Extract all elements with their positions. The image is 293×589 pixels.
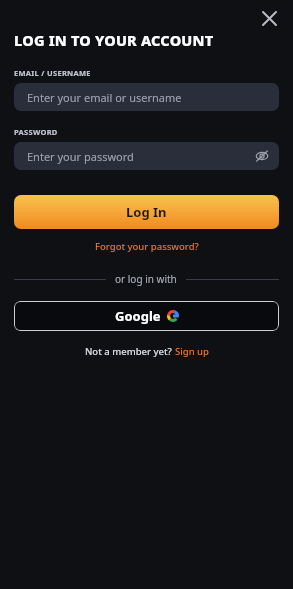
staticText: Sign up	[175, 345, 209, 358]
button[interactable]: Log In	[14, 195, 279, 229]
button[interactable]: Show password	[251, 145, 273, 167]
staticText: LOG IN TO YOUR ACCOUNT	[14, 30, 214, 50]
button[interactable]: Not a member yet?	[85, 345, 209, 358]
button[interactable]: Enter your email or username	[14, 83, 279, 111]
staticText: Forgot your password?	[95, 240, 199, 253]
button[interactable]: Enter your password	[14, 142, 279, 170]
staticText: Enter your email or username	[27, 90, 182, 105]
staticText: PASSWORD	[14, 127, 58, 137]
staticText: Log In	[126, 203, 167, 221]
button[interactable]: Google	[14, 301, 279, 331]
staticText: Not a member yet?	[85, 345, 175, 358]
staticText: Enter your password	[27, 149, 134, 164]
button[interactable]: Forgot your password?	[91, 238, 203, 255]
button[interactable]: Close	[255, 4, 283, 32]
staticText: Google	[115, 307, 161, 325]
staticText: or log in with	[115, 272, 177, 286]
staticText: EMAIL / USERNAME	[14, 68, 91, 78]
